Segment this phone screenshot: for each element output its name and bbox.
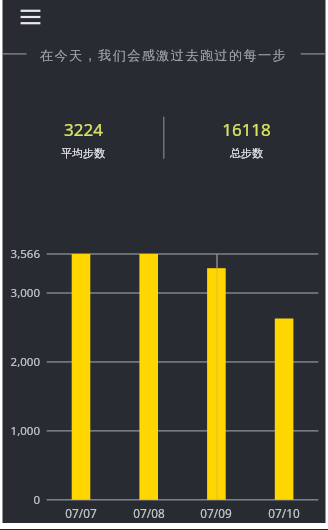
staticText: 总步数 — [230, 146, 263, 160]
staticText: 2,000 — [10, 354, 40, 370]
staticText: 在今天，我们会感激过去跑过的每一步 — [40, 47, 288, 64]
button[interactable]: 07/09 — [188, 504, 244, 522]
button[interactable]: 3224 — [13, 118, 153, 160]
staticText: 3,566 — [10, 246, 40, 262]
staticText: 07/09 — [200, 505, 232, 521]
button[interactable]: 07/08 — [121, 504, 177, 522]
button[interactable]: 07/10 — [256, 504, 312, 522]
staticText: 1,000 — [10, 423, 40, 439]
staticText: 3224 — [64, 118, 103, 141]
button[interactable]: Open navigation menu — [8, 2, 53, 32]
staticText: 07/10 — [268, 505, 300, 521]
button[interactable]: 16118 — [176, 118, 316, 160]
staticText: 07/08 — [133, 505, 165, 521]
button[interactable]: 07/07 — [53, 504, 109, 522]
staticText: 0 — [33, 492, 40, 508]
staticText: 平均步数 — [61, 146, 105, 160]
staticText: 3,000 — [10, 285, 40, 301]
staticText: 07/07 — [65, 505, 97, 521]
staticText: 16118 — [222, 118, 271, 141]
